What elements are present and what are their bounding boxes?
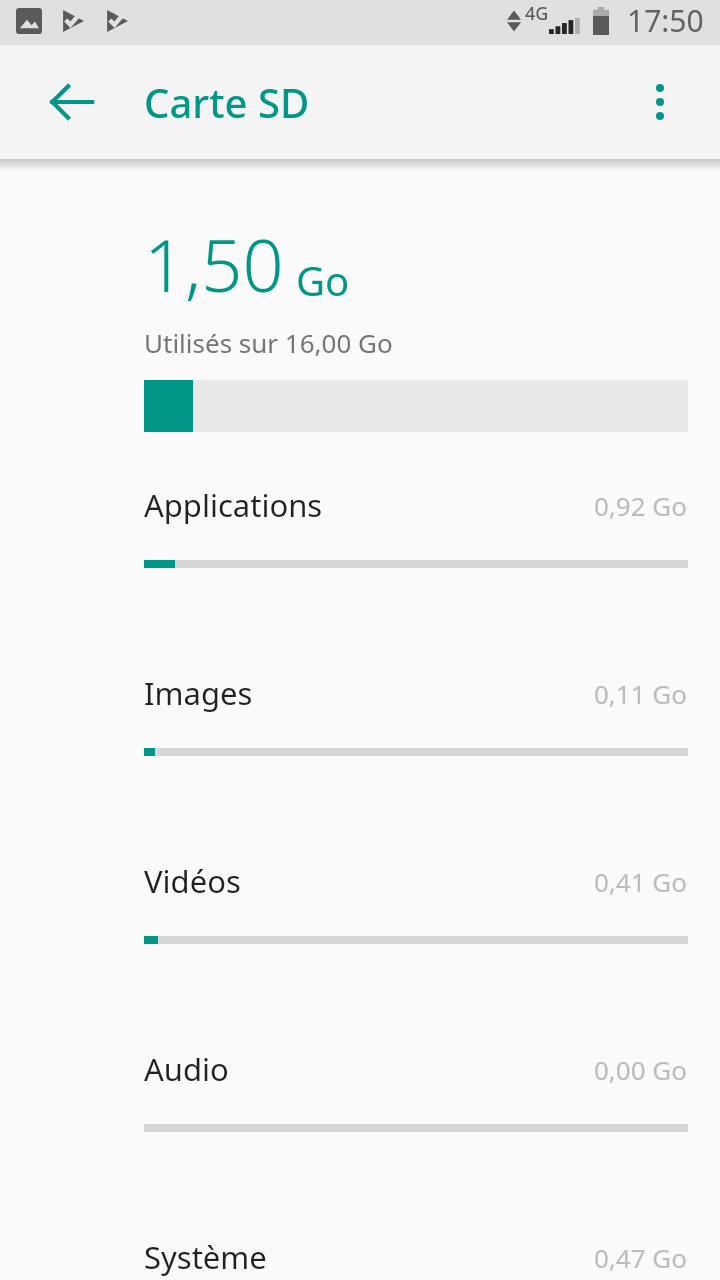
button[interactable]: Images bbox=[0, 620, 720, 808]
button[interactable]: Système bbox=[0, 1184, 720, 1280]
staticText: Applications bbox=[144, 484, 323, 526]
staticText: 0,92 Go bbox=[594, 488, 688, 523]
staticText: Vidéos bbox=[144, 860, 241, 902]
button[interactable]: Audio bbox=[0, 996, 720, 1184]
staticText: 0,00 Go bbox=[594, 1052, 688, 1087]
staticText: Go bbox=[296, 253, 350, 307]
staticText: Système bbox=[144, 1236, 267, 1278]
staticText: 17:50 bbox=[627, 0, 704, 41]
staticText: 0,11 Go bbox=[594, 676, 688, 711]
staticText: Carte SD bbox=[144, 75, 310, 129]
staticText: 4G bbox=[525, 1, 549, 26]
staticText: 1,50 bbox=[144, 215, 284, 313]
staticText: Audio bbox=[144, 1048, 229, 1090]
staticText: 0,41 Go bbox=[594, 864, 688, 899]
staticText: Utilisés sur 16,00 Go bbox=[144, 325, 393, 360]
staticText: 0,47 Go bbox=[594, 1240, 688, 1275]
button[interactable]: Vidéos bbox=[0, 808, 720, 996]
button[interactable]: Applications bbox=[0, 432, 720, 620]
staticText: Images bbox=[144, 672, 253, 714]
button[interactable]: More options bbox=[612, 54, 708, 150]
button[interactable]: Back bbox=[24, 54, 120, 150]
